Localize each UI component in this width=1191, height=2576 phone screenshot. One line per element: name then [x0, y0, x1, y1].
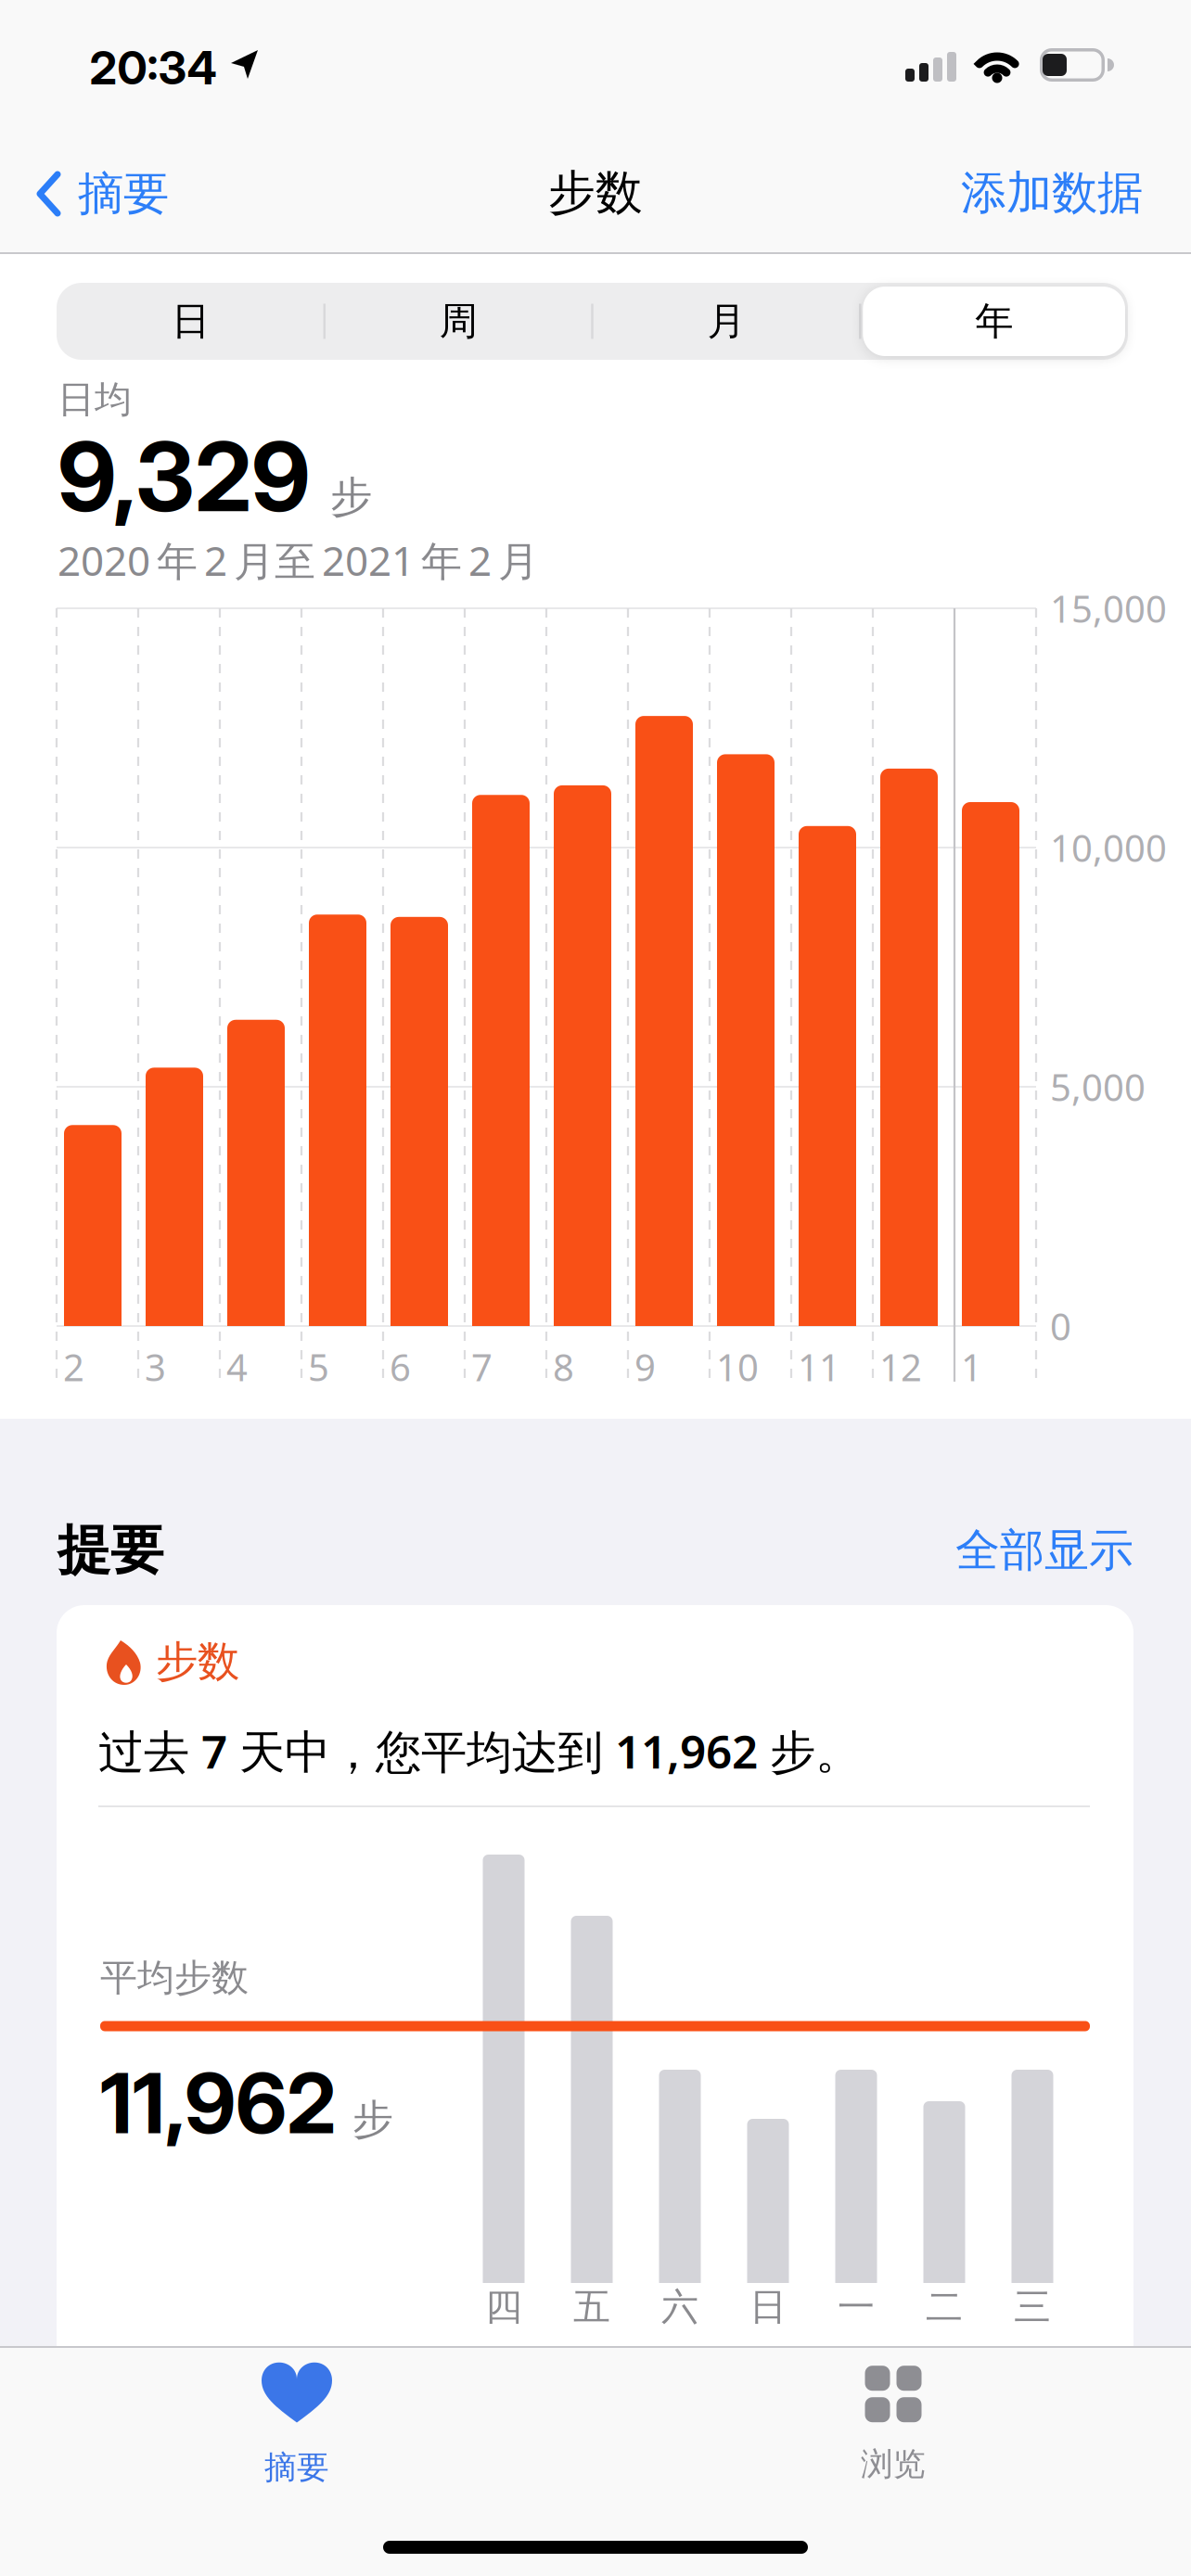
staticText: 月 [707, 298, 745, 345]
button[interactable]: 添加数据 [846, 151, 1143, 235]
staticText: 10,000 [1050, 823, 1167, 872]
staticText: 提要 [58, 1518, 163, 1583]
staticText: 步 [330, 471, 372, 523]
staticText: 2 [63, 1342, 84, 1391]
staticText: 五 [573, 2284, 610, 2330]
staticText: 摘要 [264, 2448, 329, 2487]
staticText: 11,962 [100, 2053, 336, 2153]
staticText: 6 [390, 1342, 411, 1391]
staticText: 3 [145, 1342, 166, 1391]
staticText: 5,000 [1050, 1062, 1146, 1111]
staticText: 六 [661, 2284, 698, 2330]
staticText: 0 [1050, 1301, 1071, 1351]
staticText: 日 [749, 2284, 787, 2330]
button[interactable]: 浏览 [754, 2343, 1032, 2506]
staticText: 步 [352, 2095, 393, 2145]
button[interactable]: 摘要 [158, 2343, 436, 2506]
staticText: 5 [308, 1342, 329, 1391]
staticText: 12 [879, 1342, 922, 1391]
staticText: 20:34 [90, 40, 217, 95]
staticText: 11 [798, 1342, 840, 1391]
staticText: 2020 年 2 月至 2021 年 2 月 [58, 533, 539, 587]
staticText: 一 [838, 2284, 875, 2330]
staticText: 全部显示 [955, 1523, 1133, 1578]
staticText: 年 [975, 298, 1013, 345]
staticText: 二 [926, 2284, 963, 2330]
button[interactable]: 全部显示 [855, 1518, 1133, 1583]
button[interactable]: 年 [860, 283, 1128, 360]
staticText: 三 [1014, 2284, 1051, 2330]
staticText: 周 [439, 298, 477, 345]
button[interactable]: 日 [57, 283, 324, 360]
staticText: 过去 7 天中，您平均达到 11,962 步。 [98, 1720, 861, 1781]
staticText: 步数 [548, 164, 643, 222]
staticText: 浏览 [861, 2445, 926, 2484]
staticText: 15,000 [1050, 584, 1167, 633]
staticText: 10 [716, 1342, 759, 1391]
staticText: 摘要 [78, 166, 169, 222]
staticText: 8 [553, 1342, 574, 1391]
staticText: 平均步数 [100, 1955, 249, 2001]
staticText: 9,329 [58, 419, 310, 534]
staticText: 添加数据 [961, 165, 1143, 221]
button[interactable]: 摘要 [37, 152, 250, 236]
button[interactable]: 周 [324, 283, 592, 360]
staticText: 4 [226, 1342, 248, 1391]
button[interactable]: 月 [592, 283, 860, 360]
staticText: 7 [471, 1342, 493, 1391]
staticText: 9 [634, 1342, 656, 1391]
button[interactable]: 步数 [0, 0, 1191, 2576]
staticText: 日 [172, 298, 210, 345]
staticText: 1 [961, 1342, 982, 1391]
staticText: 步数 [156, 1636, 239, 1688]
staticText: 日均 [58, 377, 132, 422]
staticText: 四 [485, 2284, 522, 2330]
